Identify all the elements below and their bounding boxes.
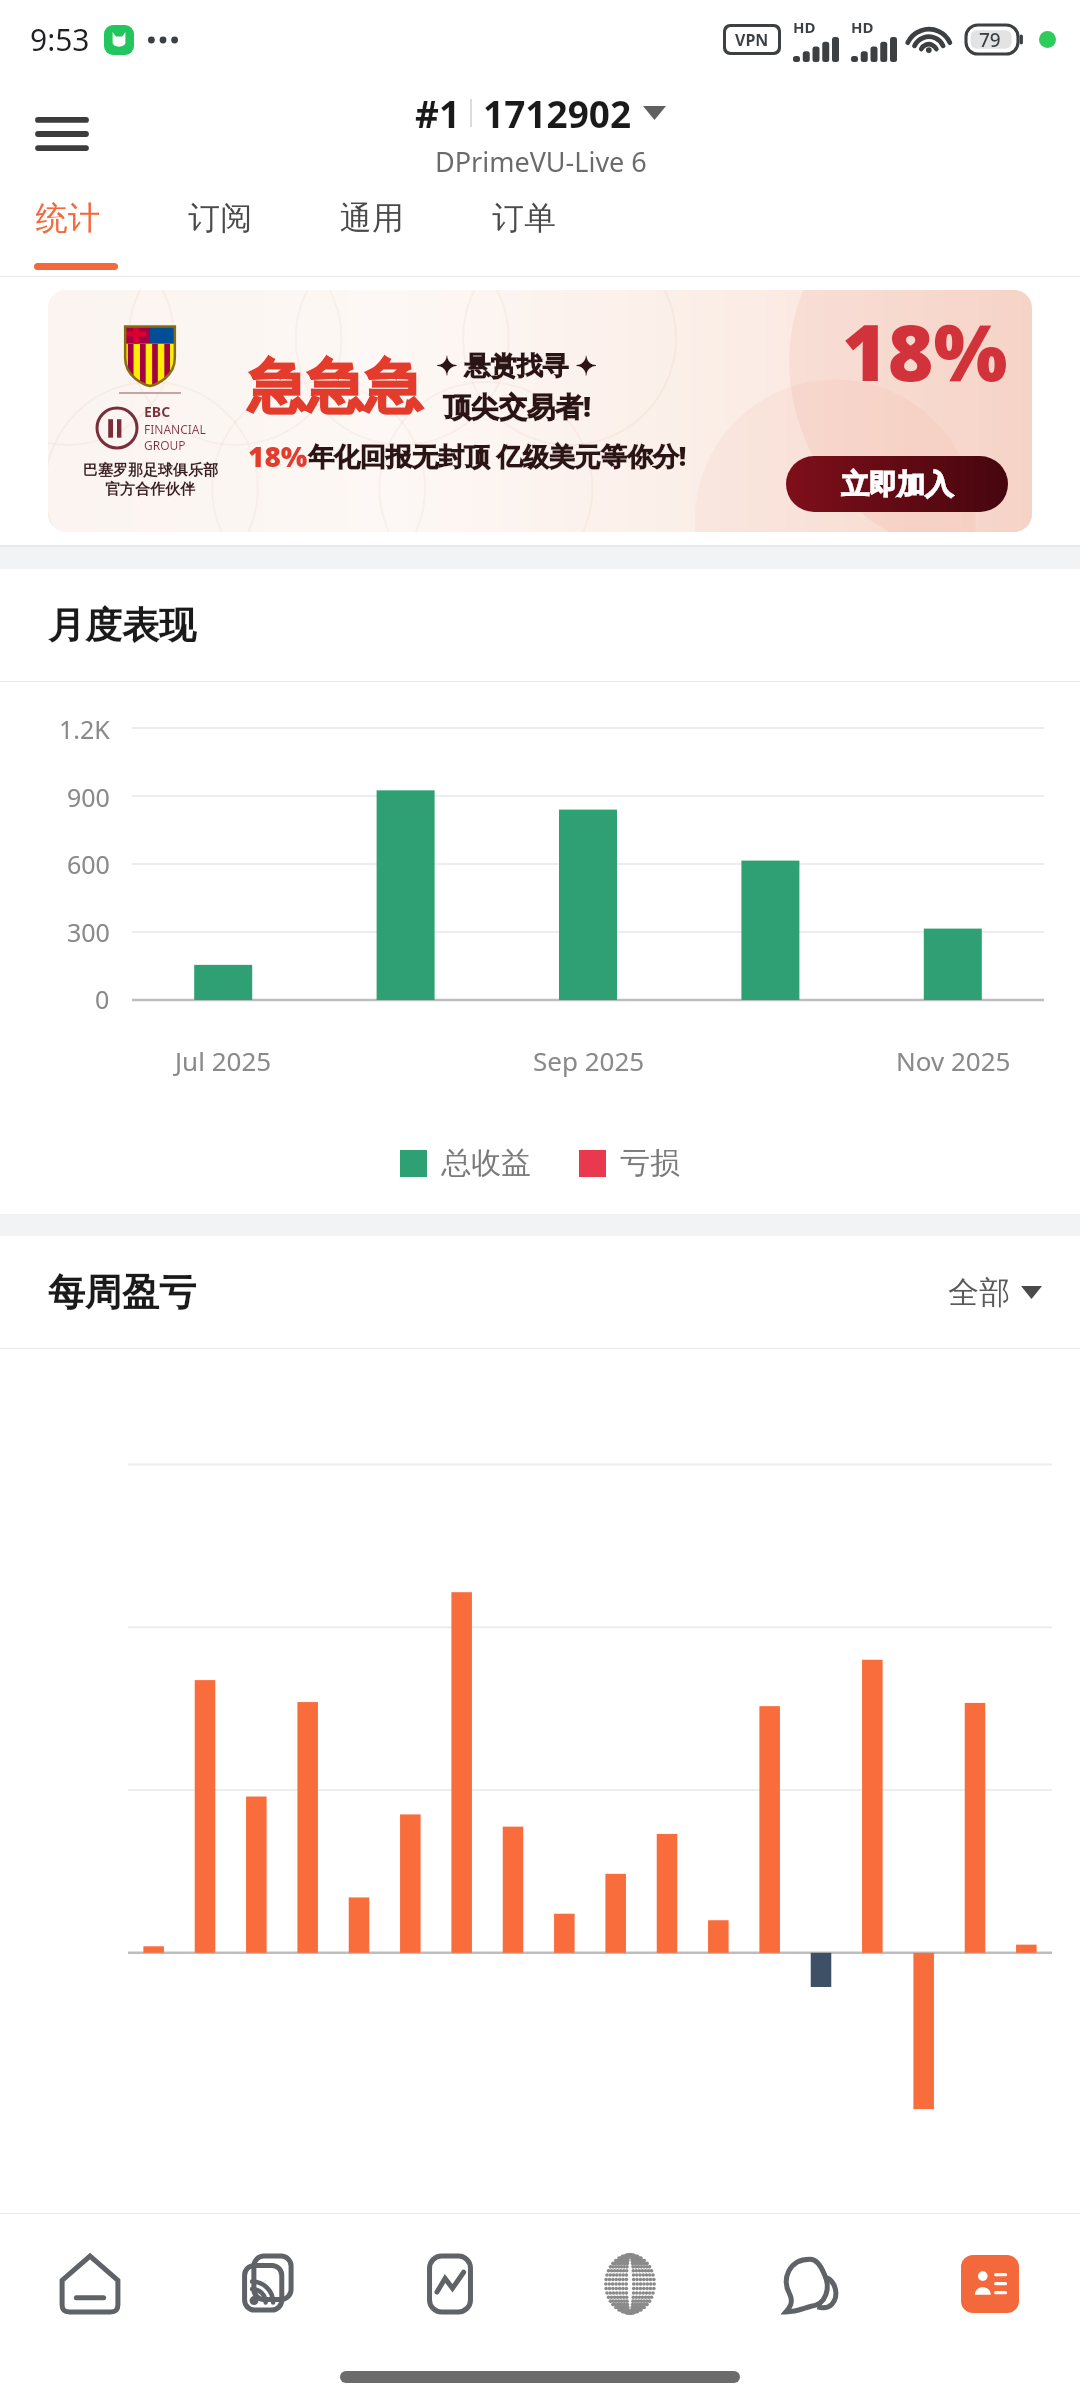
staticText: 18% (842, 298, 1008, 404)
button[interactable]: 亏损 (579, 1144, 680, 1182)
staticText: EBC (144, 402, 171, 421)
button[interactable]: Home (0, 2214, 180, 2354)
staticText: 0 (95, 982, 110, 1016)
staticText: 立即加入 (841, 467, 953, 502)
staticText: 300 (67, 915, 110, 949)
staticText: Jul 2025 (175, 1043, 272, 1078)
staticText: 全部 (948, 1273, 1010, 1312)
staticText: 每周盈亏 (48, 1269, 196, 1316)
staticText: 统计 (36, 198, 100, 238)
staticText: 总收益 (441, 1144, 531, 1182)
staticText: 18% (248, 437, 308, 475)
staticText: 巴塞罗那足球俱乐部 (83, 461, 218, 480)
staticText: HD (851, 17, 874, 37)
button[interactable]: 订阅 (184, 190, 336, 276)
staticText: #1 (415, 88, 461, 138)
button[interactable]: 通用 (336, 190, 488, 276)
staticText: 年化回报无封顶 亿级美元等你分! (308, 438, 687, 474)
staticText: 月度表现 (48, 602, 196, 649)
button[interactable]: Network (540, 2214, 720, 2354)
staticText: 顶尖交易者! (443, 387, 592, 425)
staticText: 订单 (492, 198, 556, 238)
button[interactable]: Charts (360, 2214, 540, 2354)
staticText: FINANCIAL (144, 421, 206, 437)
button[interactable]: 立即加入 (786, 456, 1008, 512)
staticText: Nov 2025 (896, 1043, 1011, 1078)
staticText: 9:53 (30, 19, 90, 60)
staticText: 79 (979, 27, 1001, 53)
button[interactable]: Menu (24, 96, 100, 172)
button[interactable]: #1 (415, 88, 666, 180)
staticText: 订阅 (188, 198, 252, 238)
button[interactable]: Chat (720, 2214, 900, 2354)
staticText: GROUP (144, 437, 186, 453)
staticText: 600 (67, 847, 110, 881)
button[interactable]: Profile (900, 2214, 1080, 2354)
staticText: 1712902 (483, 88, 632, 138)
button[interactable]: EBC (48, 290, 1032, 532)
button[interactable]: 全部 (948, 1273, 1042, 1312)
button[interactable]: 统计 (32, 190, 184, 276)
staticText: ✦ 悬赏找寻 ✦ (436, 347, 598, 383)
staticText: 900 (67, 780, 110, 814)
staticText: 亏损 (620, 1144, 680, 1182)
staticText: Sep 2025 (533, 1043, 645, 1078)
button[interactable]: 总收益 (400, 1144, 531, 1182)
staticText: 官方合作伙伴 (105, 480, 195, 499)
staticText: 1.2K (59, 712, 110, 746)
staticText: DPrimeVU-Live 6 (435, 143, 647, 180)
staticText: HD (793, 17, 816, 37)
staticText: VPN (735, 29, 769, 51)
staticText: 通用 (340, 198, 404, 238)
button[interactable]: 订单 (488, 190, 640, 276)
button[interactable]: Signals (180, 2214, 360, 2354)
staticText: 急急急 (248, 350, 422, 423)
